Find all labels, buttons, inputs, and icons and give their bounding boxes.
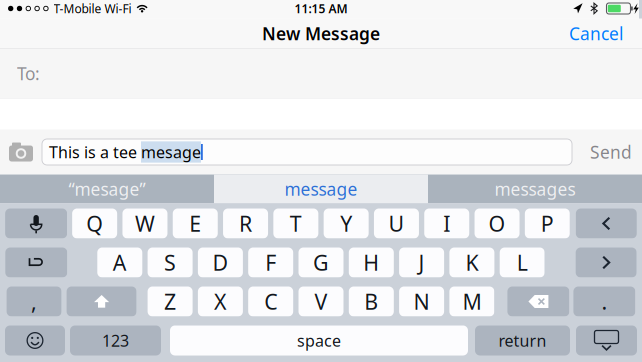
staticText: space [297,330,341,351]
staticText: message [284,177,357,200]
staticText: O [489,209,506,238]
button[interactable]: G [298,247,343,277]
button[interactable]: O [475,208,520,238]
staticText: A [113,248,127,277]
button[interactable]: Dictation [5,208,67,238]
button[interactable]: This is a tee [42,139,572,165]
staticText: U [388,209,404,238]
button[interactable]: Cancel [555,15,642,52]
staticText: L [517,248,528,277]
staticText: S [164,248,176,277]
button[interactable]: Previous field [576,208,637,238]
staticText: New Message [262,22,380,45]
button[interactable]: N [399,286,444,316]
staticText: T [290,209,302,238]
button[interactable]: Send [590,130,642,173]
button[interactable]: messages [428,174,642,203]
staticText: This is a tee [49,141,141,163]
button[interactable]: A [97,247,142,277]
button[interactable]: R [223,208,268,238]
staticText: K [465,248,478,277]
button[interactable]: H [349,247,394,277]
staticText: Send [590,140,632,163]
staticText: , [31,287,37,316]
staticText: D [212,248,228,277]
button[interactable]: Emoji [5,325,65,355]
button[interactable]: P [525,208,570,238]
staticText: “mesage” [68,177,145,200]
staticText: J [419,248,425,277]
button[interactable]: Numbers [70,325,161,355]
button[interactable]: Z [148,286,193,316]
button[interactable]: space [170,325,468,355]
button[interactable]: Next field [576,247,637,277]
staticText: T-Mobile Wi-Fi [54,0,132,16]
staticText: W [135,209,155,238]
staticText: M [462,287,481,316]
staticText: mesage [141,141,201,163]
button[interactable]: Undo [5,247,67,277]
staticText: return [498,330,546,351]
button[interactable]: Insert photo [0,129,42,174]
staticText: F [265,248,276,277]
staticText: 123 [102,330,129,351]
staticText: N [414,287,430,316]
button[interactable]: message [214,174,428,203]
button[interactable]: L [500,247,545,277]
button[interactable]: X [198,286,243,316]
staticText: V [314,287,327,316]
button[interactable]: K [449,247,494,277]
staticText: I [443,209,450,238]
button[interactable]: Return [475,325,570,355]
button[interactable]: T [273,208,318,238]
button[interactable]: S [148,247,193,277]
button[interactable]: B [349,286,394,316]
staticText: H [363,248,379,277]
staticText: . [601,287,607,316]
button[interactable]: C [248,286,293,316]
staticText: messages [494,177,575,200]
button[interactable]: J [399,247,444,277]
button[interactable]: M [449,286,494,316]
button[interactable]: D [198,247,243,277]
button[interactable]: Comma [7,286,62,316]
button[interactable]: F [248,247,293,277]
staticText: To: [17,62,40,85]
staticText: G [313,248,329,277]
button[interactable]: “mesage” [0,174,214,203]
staticText: E [189,209,201,238]
staticText: 11:15 AM [294,0,347,16]
staticText: R [239,209,252,238]
button[interactable]: Dismiss keyboard [576,325,637,355]
staticText: Q [86,209,103,238]
button[interactable]: Y [324,208,369,238]
button[interactable]: I [424,208,469,238]
button[interactable]: Q [72,208,117,238]
staticText: X [214,287,227,316]
button[interactable]: Shift [67,286,137,316]
staticText: C [264,287,277,316]
staticText: Y [340,209,352,238]
staticText: P [541,209,554,238]
button[interactable]: W [122,208,167,238]
button[interactable]: E [173,208,218,238]
button[interactable]: V [298,286,343,316]
staticText: B [364,287,378,316]
button[interactable]: U [374,208,419,238]
button[interactable]: Delete [507,286,569,316]
staticText: Z [164,287,176,316]
button[interactable]: Period [573,286,635,316]
staticText: Cancel [569,22,623,45]
